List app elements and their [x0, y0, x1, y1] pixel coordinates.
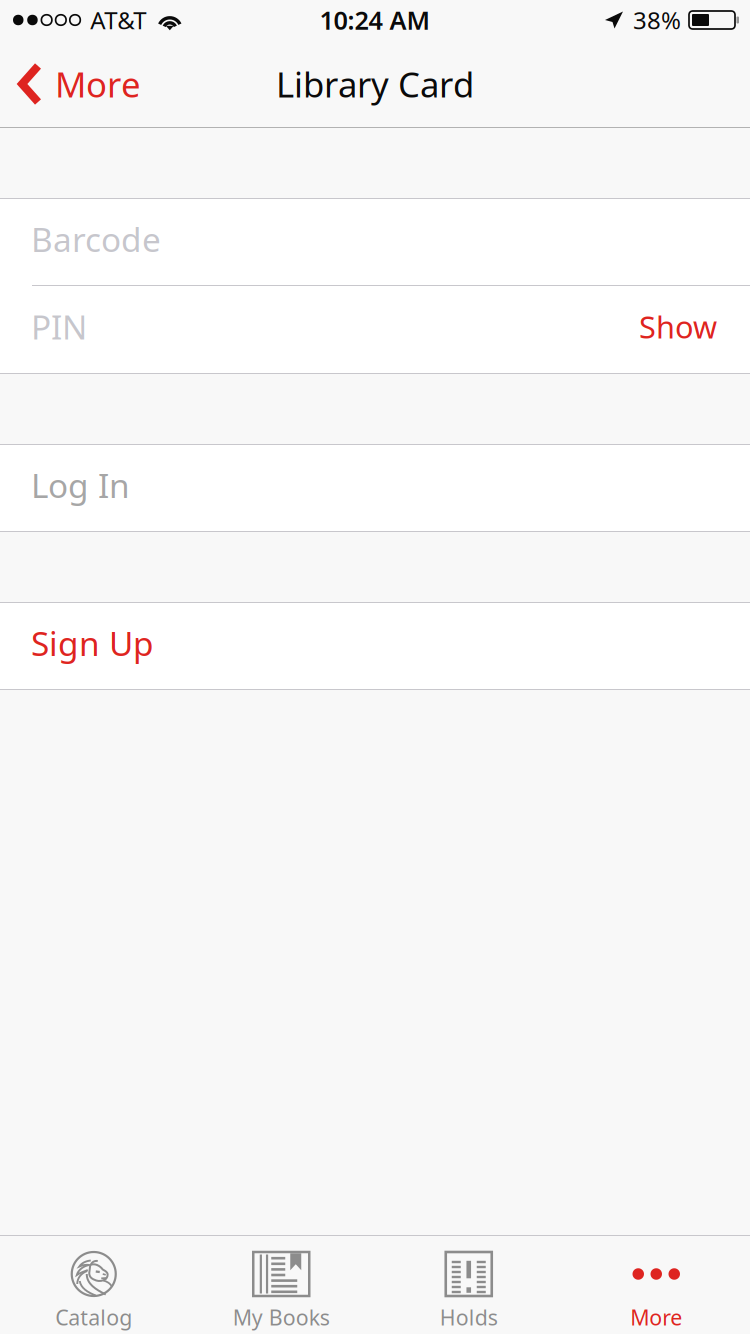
button[interactable]: My Books: [187, 1236, 375, 1334]
staticText: More: [630, 1303, 682, 1331]
staticText: Holds: [440, 1303, 498, 1331]
button[interactable]: Sign Up: [0, 603, 750, 689]
staticText: Log In: [31, 463, 130, 507]
button[interactable]: PIN: [0, 286, 750, 373]
button[interactable]: Holds: [375, 1236, 562, 1334]
button[interactable]: More: [562, 1236, 750, 1334]
staticText: 38%: [633, 4, 681, 36]
staticText: Sign Up: [31, 621, 154, 665]
button[interactable]: More: [0, 40, 153, 128]
staticText: Show: [639, 306, 717, 347]
staticText: AT&T: [90, 4, 146, 36]
staticText: Library Card: [276, 61, 474, 107]
staticText: More: [55, 61, 141, 107]
staticText: PIN: [31, 304, 87, 349]
staticText: 10:24 AM: [319, 3, 430, 37]
button[interactable]: Catalog: [0, 1236, 187, 1334]
button[interactable]: Log In: [0, 445, 750, 531]
staticText: My Books: [233, 1303, 330, 1331]
button[interactable]: Barcode: [0, 199, 750, 286]
staticText: Catalog: [55, 1303, 132, 1331]
staticText: Barcode: [31, 217, 161, 261]
